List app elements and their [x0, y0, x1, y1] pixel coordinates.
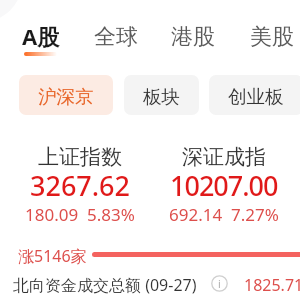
button[interactable]: 港股 — [161, 13, 225, 61]
staticText: 创业板 — [228, 85, 284, 108]
staticText: 深证成指 — [182, 144, 266, 170]
button[interactable]: 全球 — [84, 13, 148, 61]
button[interactable]: A股 — [12, 11, 70, 61]
button[interactable]: 创业板 — [209, 75, 300, 115]
staticText: 上证指数 — [38, 144, 122, 170]
button[interactable]: 板块 — [124, 75, 199, 115]
staticText: i — [218, 276, 221, 291]
staticText: 美股 — [250, 23, 294, 51]
staticText: 沪深京 — [38, 85, 94, 108]
staticText: 北向资金成交总额 (09-27) — [13, 274, 197, 296]
button[interactable]: 美股 — [240, 13, 300, 61]
staticText: 全球 — [94, 23, 138, 51]
button[interactable]: Info — [211, 275, 228, 292]
staticText: 港股 — [171, 23, 215, 51]
button[interactable]: 沪深京 — [19, 75, 113, 115]
staticText: A股 — [22, 21, 60, 51]
staticText: 涨5146家 — [18, 245, 87, 267]
staticText: 692.14 7.27% — [169, 203, 279, 226]
staticText: 180.09 5.83% — [25, 203, 135, 226]
button[interactable]: 涨5146家 — [18, 245, 87, 267]
staticText: 10207.00 — [170, 167, 278, 204]
staticText: 3267.62 — [30, 167, 131, 204]
staticText: 1825.71 — [244, 274, 300, 296]
button[interactable]: 北向资金成交总额 (09-27) — [13, 274, 197, 296]
staticText: 板块 — [143, 85, 180, 108]
